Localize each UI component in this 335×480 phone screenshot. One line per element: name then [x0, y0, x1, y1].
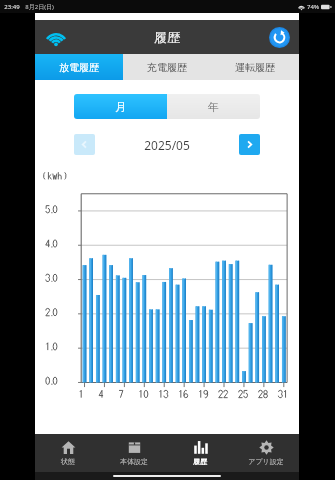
staticText: 23:49 — [4, 3, 20, 11]
button[interactable]: Wi-Fi status — [43, 24, 69, 50]
button[interactable]: 状態 — [35, 434, 101, 472]
staticText: 放電履歴 — [59, 61, 99, 74]
staticText: 状態 — [61, 457, 75, 466]
button[interactable]: 月 — [74, 94, 167, 119]
staticText: 8月2日(日) — [25, 3, 54, 11]
staticText: 年 — [208, 100, 219, 114]
button[interactable]: 充電履歴 — [123, 54, 211, 80]
button[interactable]: Refresh — [267, 25, 291, 49]
button[interactable]: Next month — [239, 134, 260, 155]
staticText: アプリ設定 — [248, 457, 284, 466]
staticText: 74% — [307, 3, 319, 11]
button[interactable]: 本体設定 — [101, 434, 167, 472]
staticText: 履歴 — [193, 457, 207, 466]
staticText: 2025/05 — [144, 137, 190, 153]
button[interactable]: Previous month — [74, 134, 95, 155]
staticText: 充電履歴 — [147, 61, 187, 74]
staticText: 月 — [115, 100, 126, 114]
button[interactable]: 放電履歴 — [35, 54, 123, 80]
button[interactable]: 運転履歴 — [211, 54, 299, 80]
button[interactable]: 履歴 — [167, 434, 233, 472]
button[interactable]: 年 — [167, 94, 260, 119]
staticText: 本体設定 — [120, 457, 148, 466]
staticText: 履歴 — [154, 29, 180, 45]
staticText: 運転履歴 — [235, 61, 275, 74]
button[interactable]: アプリ設定 — [233, 434, 299, 472]
